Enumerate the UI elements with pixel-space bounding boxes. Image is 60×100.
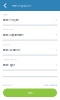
staticText: INSPECTION TYPE (2, 58, 16, 61)
button[interactable]: + Add Observer (42, 84, 57, 86)
button[interactable]: DEPARTMENT (2, 28, 57, 43)
staticText: Select Location (2, 48, 20, 52)
staticText: DEPARTMENT (2, 28, 13, 31)
staticText: PROJECT (2, 13, 8, 16)
staticText: + Add Observer (42, 84, 57, 86)
button[interactable]: INSPECTION TYPE (2, 58, 57, 73)
staticText: Select Type (2, 63, 14, 67)
staticText: NEXT (27, 91, 32, 94)
staticText: Select Department (2, 33, 23, 37)
button[interactable]: PROJECT (2, 13, 57, 28)
staticText: OBSERVERS (2, 84, 11, 86)
button[interactable]: LOCATION (2, 43, 57, 58)
staticText: Select Project (2, 18, 18, 22)
button[interactable]: Back (0, 0, 11, 11)
staticText: New Inspection (11, 4, 31, 7)
staticText: LOCATION (2, 43, 10, 46)
button[interactable]: NEXT (3, 88, 57, 97)
